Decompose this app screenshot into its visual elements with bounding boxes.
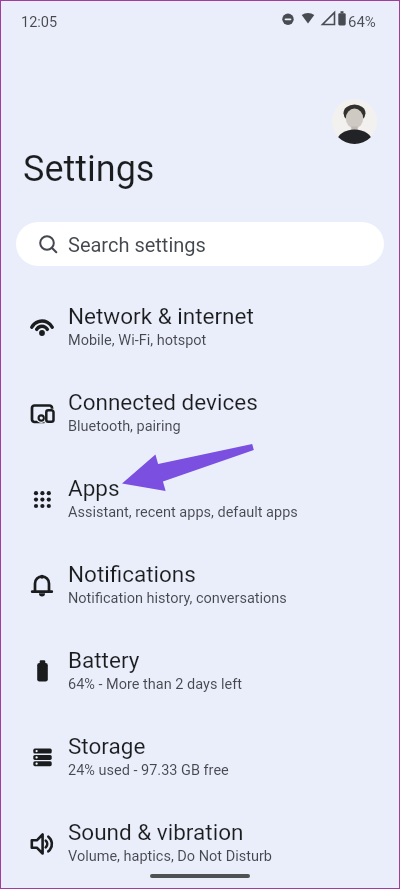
- staticText: Settings: [23, 148, 155, 190]
- staticText: 12:05: [21, 14, 58, 31]
- staticText: Bluetooth, pairing: [68, 418, 181, 435]
- staticText: Apps: [68, 475, 120, 501]
- button[interactable]: [332, 99, 377, 144]
- staticText: Volume, haptics, Do Not Disturb: [68, 848, 273, 865]
- staticText: Storage: [68, 733, 146, 759]
- staticText: Notifications: [68, 561, 196, 587]
- staticText: 24% used - 97.33 GB free: [68, 762, 229, 779]
- button[interactable]: Apps: [0, 455, 400, 541]
- button[interactable]: Storage: [0, 713, 400, 799]
- staticText: 64%: [348, 13, 376, 31]
- button[interactable]: Connected devices: [0, 369, 400, 455]
- staticText: Sound & vibration: [68, 819, 244, 845]
- staticText: Notification history, conversations: [68, 590, 287, 607]
- button[interactable]: Battery: [0, 627, 400, 713]
- staticText: Battery: [68, 647, 140, 673]
- staticText: Search settings: [68, 233, 206, 256]
- staticText: Connected devices: [68, 389, 258, 415]
- button[interactable]: Search settings: [16, 222, 384, 266]
- button[interactable]: Network & internet: [0, 283, 400, 369]
- staticText: Assistant, recent apps, default apps: [68, 504, 298, 521]
- button[interactable]: Notifications: [0, 541, 400, 627]
- staticText: 64% - More than 2 days left: [68, 676, 242, 693]
- staticText: Network & internet: [68, 303, 254, 329]
- staticText: Mobile, Wi-Fi, hotspot: [68, 332, 207, 349]
- button[interactable]: Sound & vibration: [0, 799, 400, 885]
